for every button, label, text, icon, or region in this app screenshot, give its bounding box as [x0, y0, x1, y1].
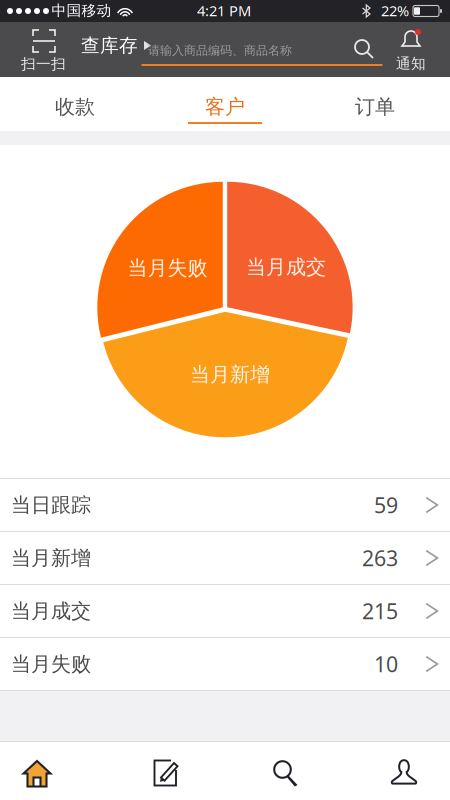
staticText: 查库存: [81, 34, 138, 57]
button[interactable]: 搜索: [344, 28, 384, 72]
button[interactable]: 当月失败: [0, 638, 450, 691]
button[interactable]: 订单: [300, 77, 450, 131]
staticText: 通知: [396, 54, 426, 72]
staticText: 当月成交: [246, 255, 326, 279]
staticText: 10: [374, 650, 398, 678]
staticText: 215: [362, 597, 398, 625]
button[interactable]: 客户: [150, 77, 300, 131]
button[interactable]: 查库存: [0, 25, 159, 65]
staticText: 263: [362, 544, 398, 572]
button[interactable]: 我的: [354, 743, 450, 800]
button[interactable]: 通知: [388, 25, 434, 75]
staticText: 中国移动: [51, 1, 111, 19]
staticText: 扫一扫: [21, 55, 66, 73]
button[interactable]: 当日跟踪: [0, 479, 450, 532]
staticText: 22%: [381, 1, 409, 20]
staticText: 客户: [205, 94, 245, 119]
staticText: 4:21 PM: [197, 1, 251, 20]
staticText: 当月新增: [190, 362, 270, 387]
staticText: 收款: [55, 94, 95, 119]
staticText: 订单: [355, 94, 395, 119]
staticText: 请输入商品编码、商品名称: [148, 43, 292, 58]
staticText: 59: [374, 491, 398, 519]
staticText: 当月成交: [11, 599, 91, 623]
button[interactable]: 当月成交: [0, 585, 450, 638]
button[interactable]: 开单: [116, 744, 216, 800]
staticText: 当月失败: [11, 652, 91, 676]
button[interactable]: 当月新增: [0, 532, 450, 585]
button[interactable]: 首页: [0, 744, 87, 800]
staticText: 当日跟踪: [11, 493, 91, 517]
button[interactable]: 查询: [236, 744, 336, 800]
staticText: 当月失败: [127, 256, 207, 280]
button[interactable]: 收款: [0, 77, 150, 131]
button[interactable]: 扫一扫: [13, 25, 73, 75]
staticText: 当月新增: [11, 546, 91, 570]
